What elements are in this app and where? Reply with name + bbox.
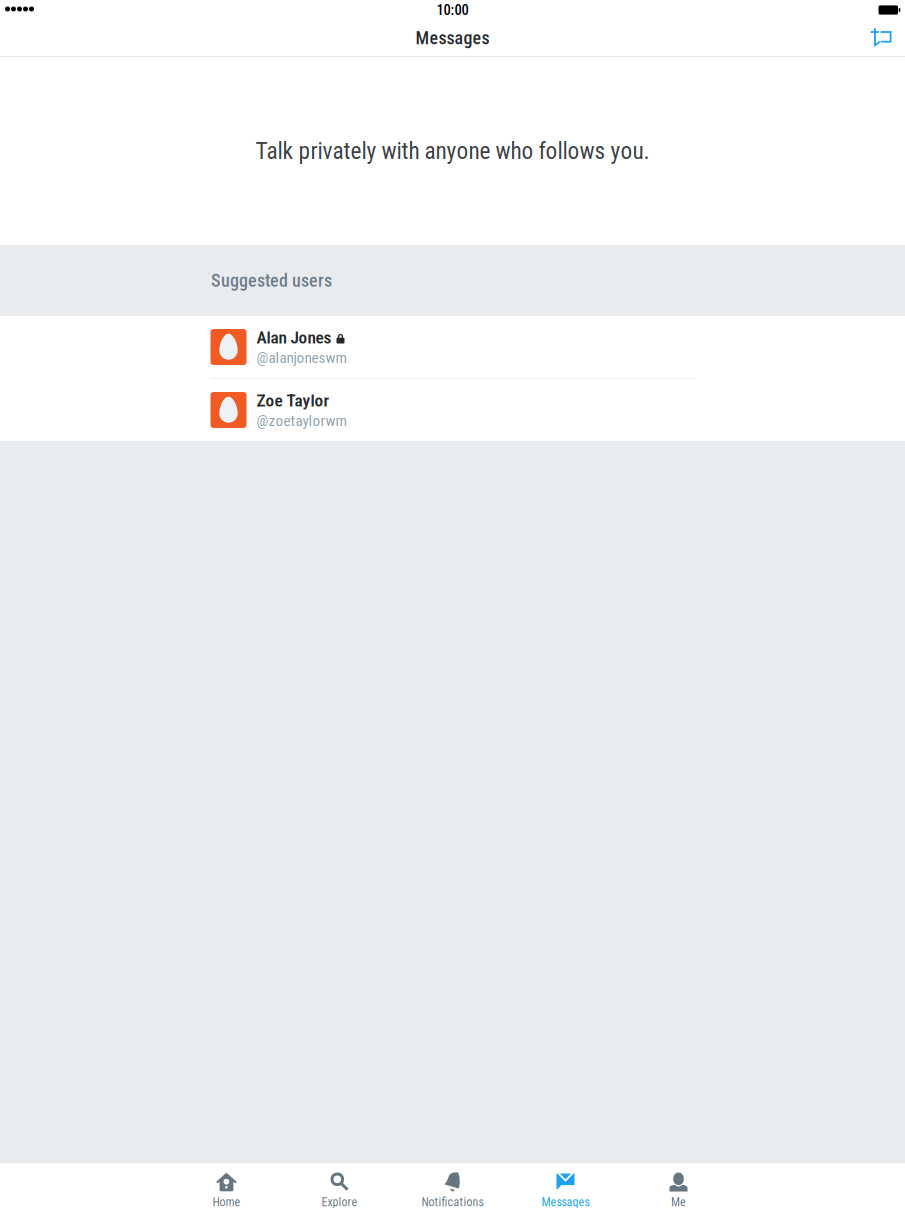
staticText: Home bbox=[212, 1195, 240, 1208]
staticText: Talk privately with anyone who follows y… bbox=[255, 137, 649, 165]
staticText: @zoetaylorwm bbox=[256, 412, 347, 430]
staticText: Me bbox=[671, 1195, 686, 1208]
staticText: Suggested users bbox=[211, 270, 332, 291]
staticText: Notifications bbox=[421, 1195, 483, 1208]
button[interactable]: Me bbox=[622, 1163, 735, 1208]
staticText: Messages bbox=[541, 1195, 589, 1208]
staticText: 10:00 bbox=[436, 1, 468, 19]
staticText: Alan Jones bbox=[256, 327, 331, 348]
button[interactable]: Notifications bbox=[396, 1163, 509, 1208]
button[interactable]: Home bbox=[170, 1163, 283, 1208]
button[interactable]: New message bbox=[860, 20, 902, 56]
staticText: Messages bbox=[415, 27, 489, 49]
button[interactable]: Explore bbox=[283, 1163, 396, 1208]
button[interactable]: Alan Jones bbox=[210, 316, 694, 378]
staticText: @alanjoneswm bbox=[256, 349, 347, 367]
staticText: Zoe Taylor bbox=[256, 390, 329, 411]
staticText: Explore bbox=[321, 1195, 357, 1208]
button[interactable]: Messages bbox=[509, 1163, 622, 1208]
button[interactable]: Zoe Taylor bbox=[210, 379, 694, 441]
